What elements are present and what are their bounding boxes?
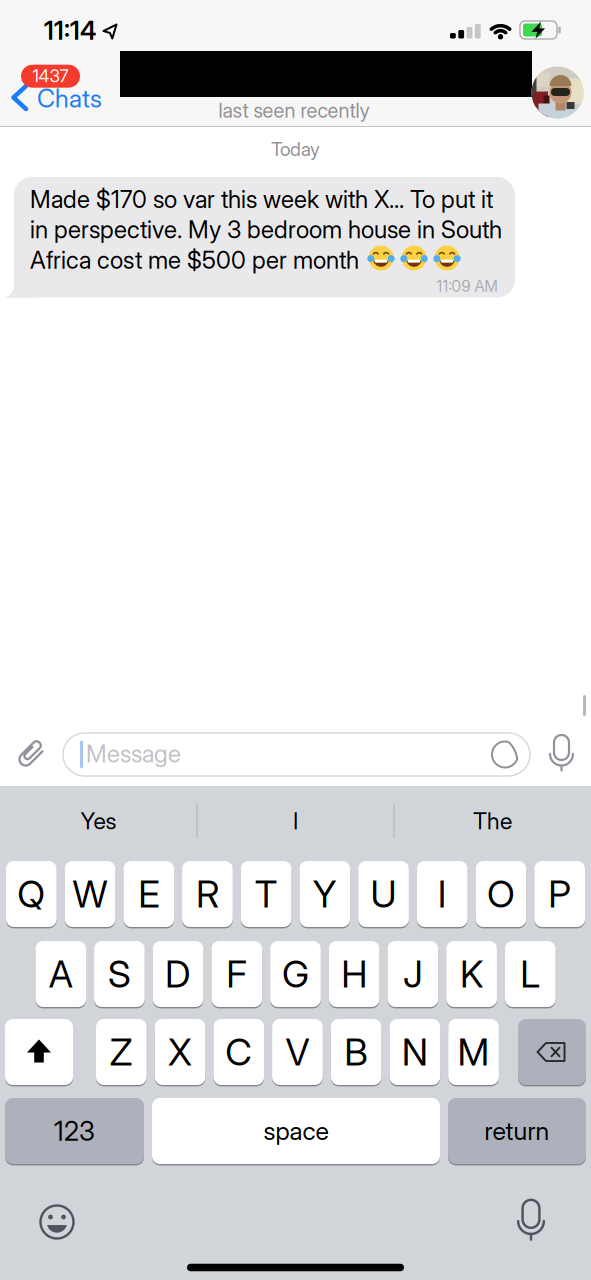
staticText: in perspective. My 3 bedroom house in So… — [30, 215, 502, 244]
button[interactable]: G — [270, 940, 321, 1008]
button[interactable]: The — [397, 789, 587, 853]
button[interactable]: Y — [299, 860, 350, 928]
staticText: 1437 — [32, 66, 68, 86]
staticText: D — [165, 952, 191, 996]
staticText: W — [73, 872, 108, 916]
button[interactable]: J — [388, 940, 438, 1008]
staticText: V — [285, 1030, 309, 1074]
button[interactable]: 123 — [5, 1097, 144, 1165]
button[interactable]: return — [448, 1097, 586, 1165]
button[interactable]: I — [417, 860, 468, 928]
button[interactable]: Emoji — [38, 1203, 76, 1241]
staticText: A — [49, 952, 73, 996]
button[interactable]: F — [211, 940, 262, 1008]
staticText: I — [293, 807, 298, 834]
staticText: P — [548, 872, 571, 916]
staticText: G — [282, 952, 309, 996]
staticText: U — [371, 872, 397, 916]
staticText: M — [458, 1030, 490, 1074]
staticText: 123 — [54, 1115, 95, 1147]
staticText: Y — [313, 872, 337, 916]
button[interactable]: Shift — [5, 1018, 73, 1086]
staticText: Today — [271, 138, 320, 160]
staticText: O — [487, 872, 515, 916]
button[interactable]: P — [534, 860, 585, 928]
button[interactable]: E — [123, 860, 174, 928]
button[interactable]: K — [446, 940, 497, 1008]
staticText: space — [263, 1116, 328, 1146]
staticText: Z — [110, 1030, 133, 1074]
button[interactable]: T — [241, 860, 291, 928]
button[interactable]: I — [200, 789, 390, 853]
button[interactable]: Profile — [531, 66, 583, 118]
staticText: 11:09 AM — [436, 277, 497, 295]
button[interactable]: U — [358, 860, 409, 928]
button[interactable]: Dictation — [514, 1199, 548, 1241]
staticText: F — [226, 952, 247, 996]
button[interactable]: Yes — [3, 789, 193, 853]
staticText: Q — [17, 872, 45, 916]
button[interactable]: X — [155, 1018, 205, 1086]
button[interactable]: V — [272, 1018, 323, 1086]
staticText: B — [344, 1030, 368, 1074]
button[interactable]: Stickers — [491, 740, 519, 768]
button[interactable]: W — [65, 860, 115, 928]
button[interactable]: Z — [96, 1018, 147, 1086]
button[interactable]: M — [448, 1018, 499, 1086]
button[interactable]: S — [94, 940, 145, 1008]
staticText: T — [255, 872, 278, 916]
staticText: I — [438, 872, 447, 916]
button[interactable]: B — [331, 1018, 381, 1086]
staticText: J — [403, 952, 423, 996]
button[interactable]: D — [153, 940, 203, 1008]
staticText: C — [225, 1030, 252, 1074]
staticText: K — [460, 952, 483, 996]
staticText: last seen recently — [218, 99, 369, 122]
button[interactable]: N — [389, 1018, 440, 1086]
button[interactable]: Q — [6, 860, 57, 928]
button[interactable]: Voice message — [546, 734, 576, 772]
button[interactable]: Message — [63, 733, 530, 776]
staticText: return — [484, 1116, 549, 1146]
staticText: E — [138, 872, 159, 916]
button[interactable]: Chats — [9, 66, 113, 111]
button[interactable]: Attach — [12, 735, 50, 773]
staticText: 11:14 — [44, 15, 96, 46]
button[interactable]: L — [505, 940, 556, 1008]
staticText: S — [108, 952, 131, 996]
button[interactable]: Delete — [518, 1018, 586, 1086]
button[interactable]: space — [152, 1097, 440, 1165]
staticText: L — [520, 952, 540, 996]
button[interactable]: H — [329, 940, 379, 1008]
staticText: Africa cost me $500 per month — [30, 246, 359, 274]
staticText: Message — [86, 739, 181, 768]
button[interactable]: R — [182, 860, 233, 928]
staticText: Made $170 so var this week with X... To … — [30, 185, 493, 213]
button[interactable]: O — [476, 860, 526, 928]
staticText: The — [473, 807, 512, 834]
staticText: Chats — [37, 84, 102, 113]
staticText: H — [341, 952, 367, 996]
staticText: R — [196, 872, 219, 916]
staticText: X — [168, 1030, 192, 1074]
staticText: Yes — [80, 807, 116, 834]
button[interactable]: A — [35, 940, 86, 1008]
staticText: N — [402, 1030, 428, 1074]
button[interactable]: C — [213, 1018, 264, 1086]
